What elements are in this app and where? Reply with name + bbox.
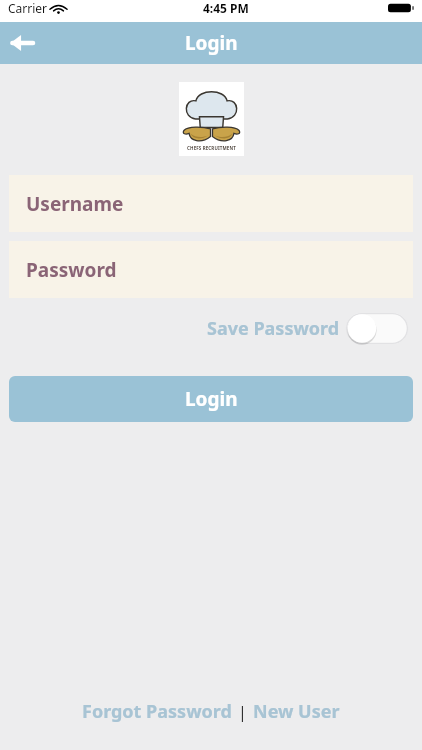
button[interactable]: Username xyxy=(9,175,413,232)
staticText: Login xyxy=(185,30,238,56)
button[interactable]: Save Password xyxy=(203,313,412,344)
staticText: Carrier xyxy=(8,0,48,16)
staticText: Save Password xyxy=(207,316,340,341)
staticText: | xyxy=(238,701,247,723)
staticText: Username xyxy=(26,191,124,217)
button[interactable]: New User xyxy=(251,695,342,728)
button[interactable]: Back xyxy=(0,22,44,64)
button[interactable]: Save Password toggle xyxy=(346,313,408,344)
staticText: Forgot Password xyxy=(82,699,232,724)
button[interactable]: Login xyxy=(9,376,413,422)
staticText: CHEFS RECRUITMENT xyxy=(187,145,236,151)
button[interactable]: Password xyxy=(9,241,413,298)
staticText: 4:45 PM xyxy=(203,0,249,16)
staticText: New User xyxy=(253,699,340,724)
staticText: Password xyxy=(26,257,117,283)
button[interactable]: Forgot Password xyxy=(80,695,234,728)
staticText: Login xyxy=(185,386,238,412)
